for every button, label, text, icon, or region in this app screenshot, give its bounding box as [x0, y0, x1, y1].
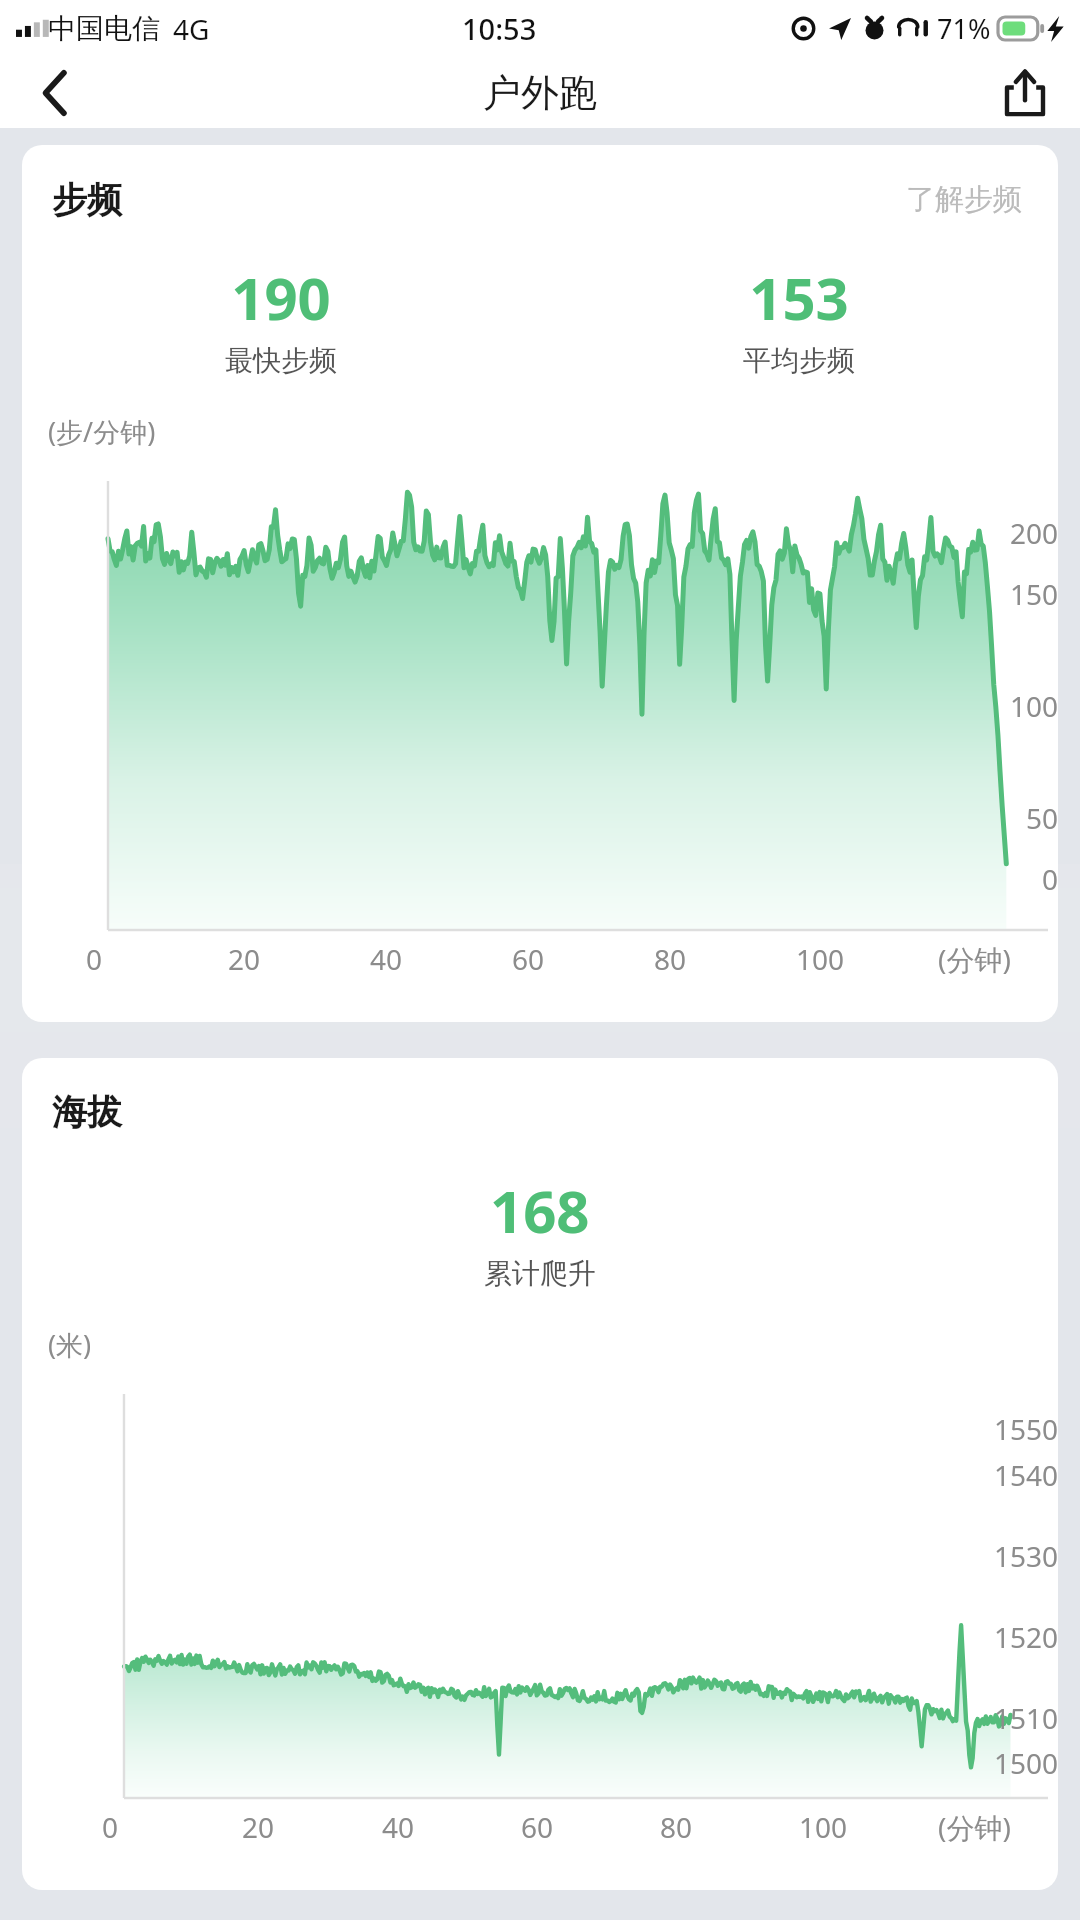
staticText: (分钟)	[938, 1808, 1011, 1846]
staticText: 100	[796, 940, 845, 978]
staticText: 1500	[993, 1744, 1058, 1782]
staticText: (分钟)	[938, 940, 1011, 978]
staticText: 0	[86, 940, 103, 978]
staticText: 1540	[993, 1456, 1058, 1494]
staticText: 168	[490, 1171, 590, 1250]
staticText: (米)	[48, 1326, 92, 1363]
button[interactable]: Share	[990, 58, 1060, 128]
staticText: 中国电信	[48, 11, 160, 46]
staticText: 0	[1041, 860, 1058, 898]
staticText: 60	[512, 940, 545, 978]
staticText: 4G	[173, 10, 210, 48]
staticText: 50	[1025, 799, 1058, 837]
staticText: 了解步频	[906, 181, 1022, 218]
staticText: 80	[654, 940, 687, 978]
button[interactable]: 了解步频	[902, 177, 1026, 222]
staticText: 60	[521, 1808, 554, 1846]
staticText: (步/分钟)	[48, 413, 156, 450]
staticText: 步频	[52, 178, 122, 222]
staticText: 累计爬升	[484, 1256, 596, 1291]
staticText: 平均步频	[743, 343, 855, 378]
staticText: 71%	[937, 10, 991, 47]
staticText: 100	[1009, 687, 1058, 725]
staticText: 20	[228, 940, 261, 978]
staticText: 100	[799, 1808, 848, 1846]
staticText: 户外跑	[483, 69, 597, 117]
staticText: 80	[660, 1808, 693, 1846]
staticText: 200	[1009, 514, 1058, 552]
staticText: 20	[242, 1808, 275, 1846]
staticText: 1530	[993, 1537, 1058, 1575]
button[interactable]: Back	[20, 58, 90, 128]
staticText: 最快步频	[225, 343, 337, 378]
staticText: 海拔	[52, 1090, 122, 1134]
button[interactable]: 步频	[22, 145, 1058, 1022]
staticText: 10:53	[462, 9, 537, 48]
staticText: 153	[749, 258, 849, 337]
staticText: 1520	[993, 1618, 1058, 1656]
staticText: 1510	[993, 1699, 1058, 1737]
staticText: 1550	[993, 1410, 1058, 1448]
staticText: 40	[382, 1808, 415, 1846]
staticText: 150	[1009, 575, 1058, 613]
staticText: 0	[102, 1808, 119, 1846]
staticText: 190	[231, 258, 331, 337]
button[interactable]: 海拔	[22, 1058, 1058, 1890]
staticText: 40	[370, 940, 403, 978]
